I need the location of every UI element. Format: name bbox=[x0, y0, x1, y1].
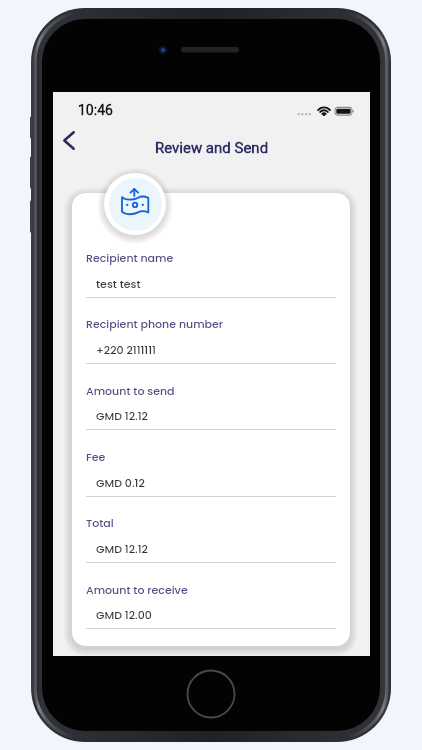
staticText: Review and Send bbox=[53, 139, 370, 157]
staticText: Recipient phone number bbox=[86, 316, 224, 331]
staticText: GMD 12.12 bbox=[96, 541, 148, 556]
staticText: GMD 12.12 bbox=[96, 408, 148, 423]
staticText: Amount to send bbox=[86, 383, 175, 398]
staticText: Total bbox=[86, 515, 114, 530]
staticText: GMD 0.12 bbox=[96, 475, 145, 490]
staticText: test test bbox=[96, 276, 141, 291]
staticText: Amount to receive bbox=[86, 582, 188, 597]
button[interactable]: Back bbox=[50, 122, 88, 158]
staticText: 10:46 bbox=[78, 102, 113, 118]
staticText: Fee bbox=[86, 449, 106, 464]
staticText: +220 2111111 bbox=[96, 342, 156, 357]
staticText: Recipient name bbox=[86, 250, 174, 265]
staticText: GMD 12.00 bbox=[96, 607, 152, 622]
